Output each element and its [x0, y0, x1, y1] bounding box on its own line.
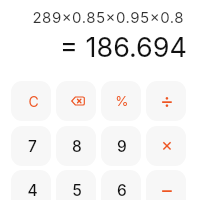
staticText: 4 [27, 181, 38, 200]
button[interactable]: 6 [101, 170, 141, 200]
button[interactable]: 9 [101, 126, 141, 166]
staticText: 9 [117, 137, 127, 156]
button[interactable]: 4 [11, 170, 51, 200]
button[interactable]: 7 [11, 126, 51, 166]
button[interactable]: × [146, 126, 186, 166]
button[interactable]: Backspace [56, 81, 96, 121]
staticText: 8 [72, 137, 82, 156]
button[interactable]: − [146, 170, 186, 200]
staticText: 7 [28, 137, 37, 156]
button[interactable]: 8 [56, 126, 96, 166]
staticText: ÷ [160, 88, 174, 113]
button[interactable]: % [101, 81, 141, 121]
staticText: C [28, 93, 39, 110]
staticText: 6 [117, 181, 127, 200]
staticText: 5 [72, 181, 82, 200]
staticText: % [115, 93, 129, 109]
button[interactable]: C [11, 81, 51, 121]
staticText: − [160, 177, 174, 200]
button[interactable]: 5 [56, 170, 96, 200]
staticText: = 186.694 [60, 31, 187, 64]
staticText: 289×0.85×0.95×0.8 [32, 8, 184, 26]
button[interactable]: ÷ [146, 81, 186, 121]
staticText: × [161, 134, 173, 156]
